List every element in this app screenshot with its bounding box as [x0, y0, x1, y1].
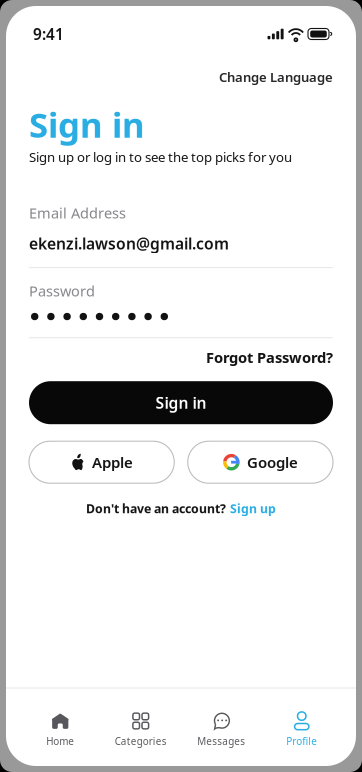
- staticText: Forgot Password?: [206, 347, 333, 367]
- staticText: Email Address: [29, 203, 126, 223]
- button[interactable]: Forgot Password?: [206, 347, 333, 367]
- button[interactable]: Google: [188, 441, 333, 483]
- staticText: Change Language: [219, 68, 333, 86]
- staticText: Password: [29, 281, 95, 301]
- staticText: Google: [247, 452, 298, 472]
- button[interactable]: Change Language: [219, 68, 333, 86]
- staticText: ekenzi.lawson@gmail.com: [29, 233, 229, 254]
- button[interactable]: Messages: [181, 711, 261, 748]
- staticText: Sign in: [29, 101, 145, 148]
- button[interactable]: Home: [20, 711, 100, 748]
- staticText: Sign in: [155, 392, 206, 413]
- button[interactable]: Categories: [100, 711, 181, 748]
- staticText: 9:41: [33, 24, 64, 44]
- staticText: Sign up: [230, 500, 276, 517]
- staticText: Don't have an account?: [86, 500, 226, 517]
- staticText: Apple: [92, 452, 133, 472]
- staticText: Home: [46, 734, 74, 748]
- button[interactable]: Sign in: [29, 381, 333, 424]
- staticText: Profile: [286, 734, 317, 748]
- staticText: Sign up or log in to see the top picks f…: [29, 148, 292, 166]
- staticText: Messages: [197, 734, 245, 748]
- button[interactable]: Don't have an account?: [86, 500, 276, 517]
- button[interactable]: Apple: [29, 441, 174, 483]
- button[interactable]: Profile: [261, 711, 342, 748]
- staticText: Categories: [115, 734, 167, 748]
